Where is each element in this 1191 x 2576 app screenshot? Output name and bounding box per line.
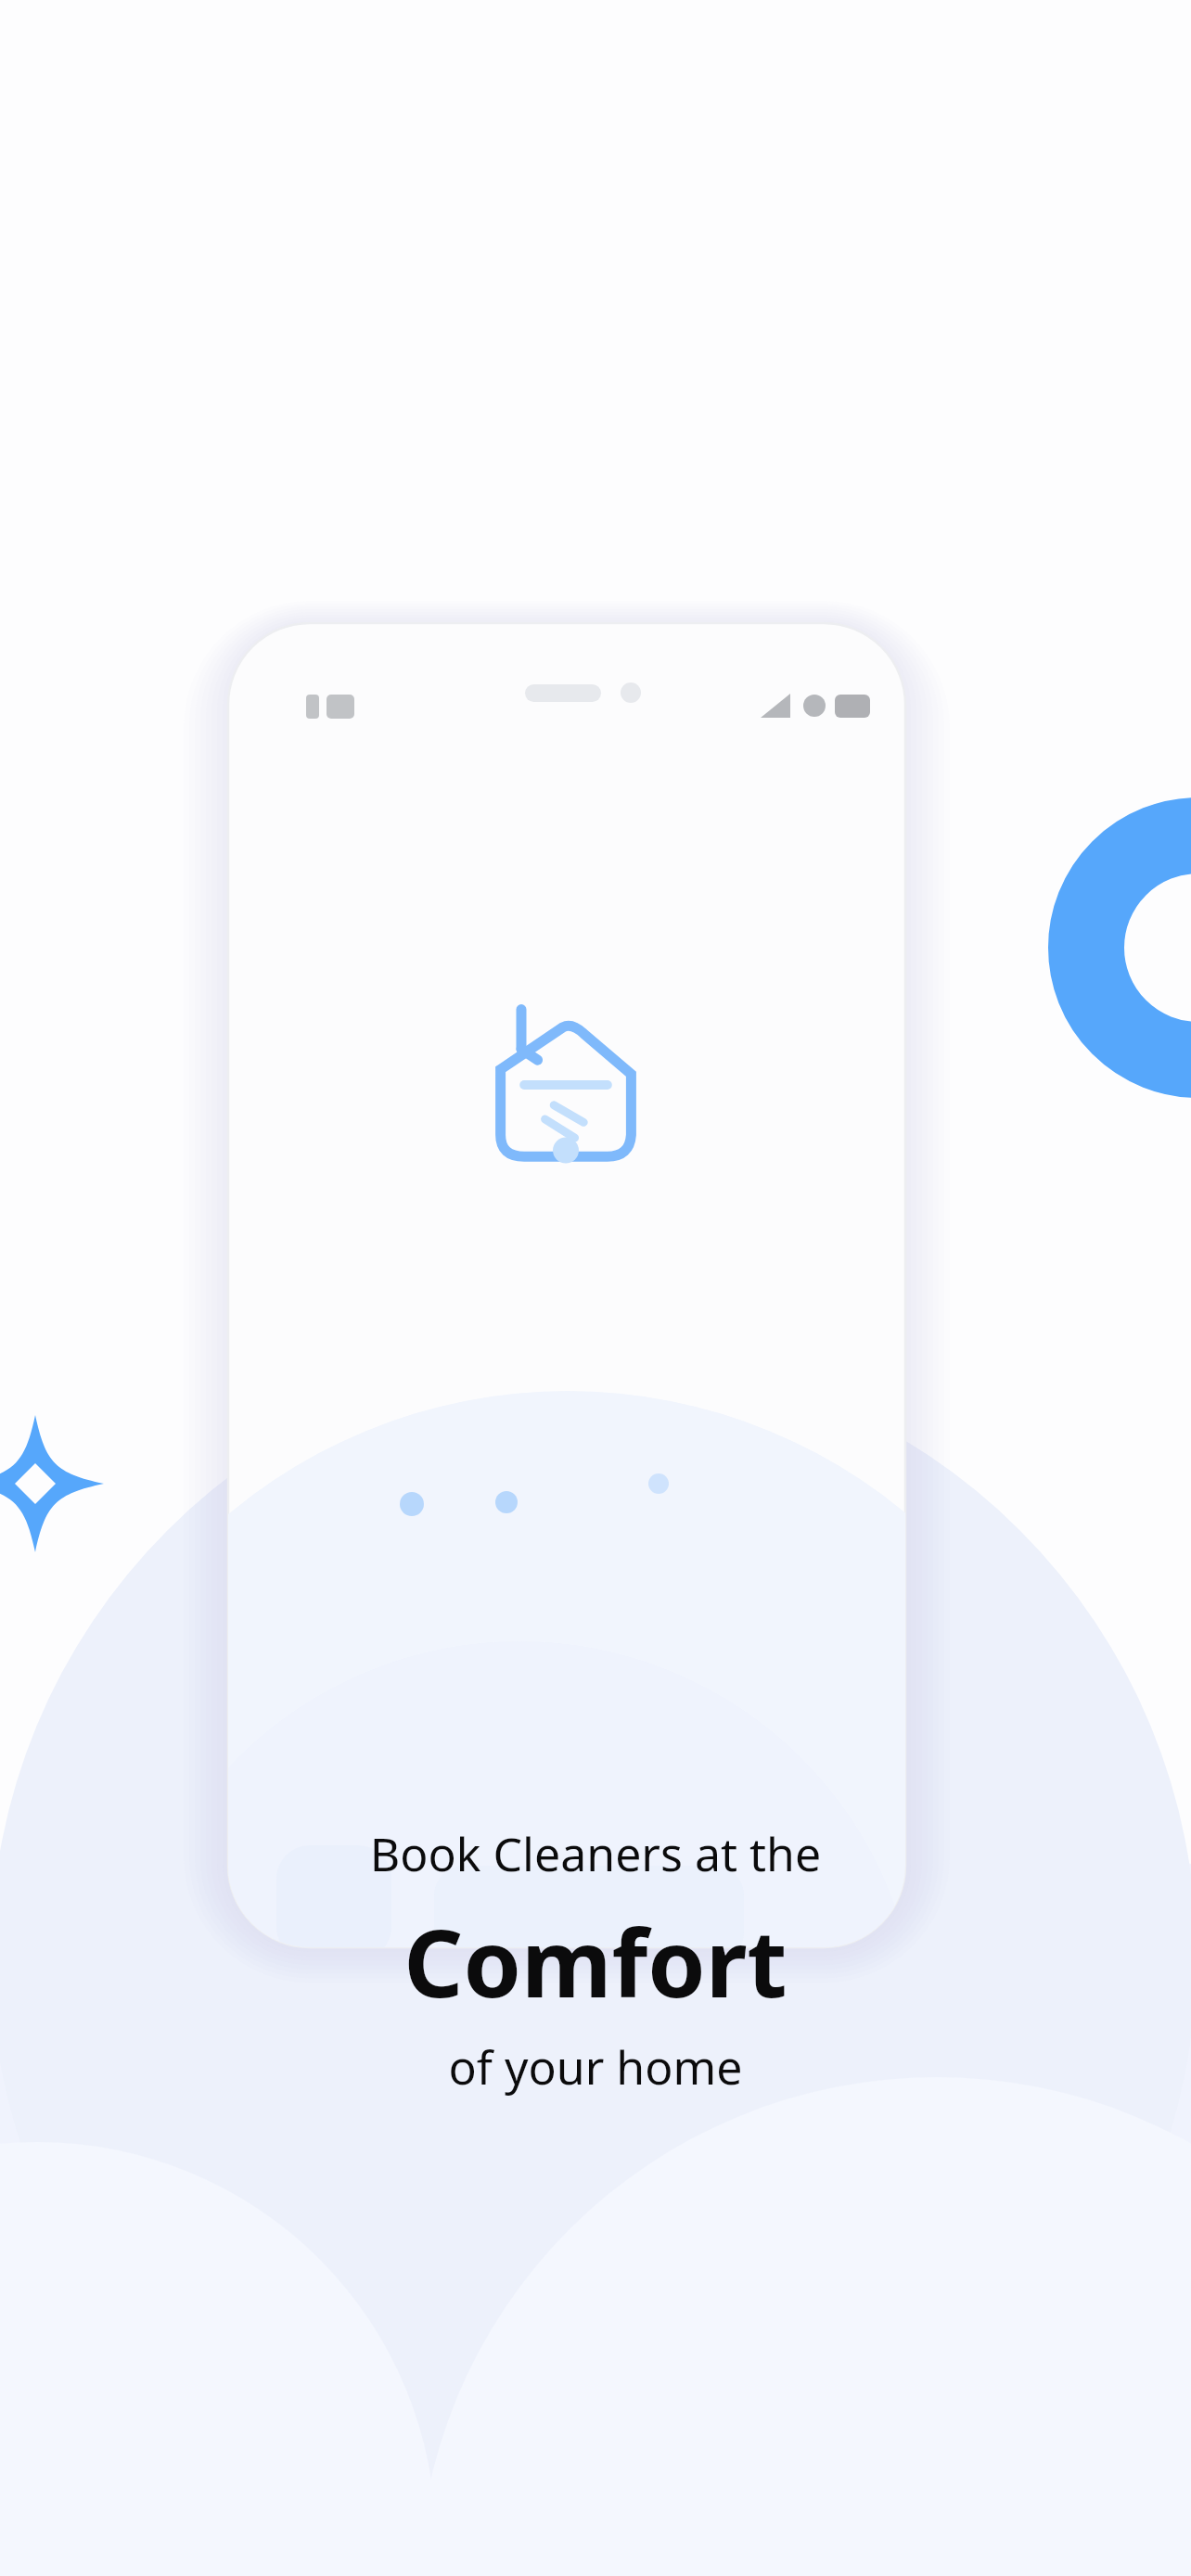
staticText: of your home — [0, 2035, 1191, 2098]
staticText: Comfort — [0, 1898, 1191, 2024]
button[interactable]: Onboarding: Book Cleaners at the Comfort… — [0, 0, 1191, 2576]
staticText: Book Cleaners at the — [0, 1822, 1191, 1885]
